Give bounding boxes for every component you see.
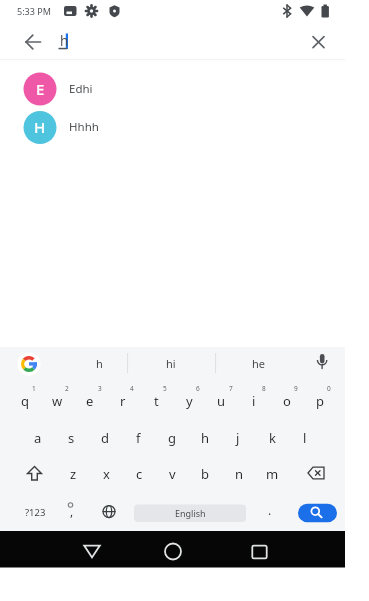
button[interactable]	[18, 28, 48, 56]
staticText: q	[21, 392, 29, 410]
button[interactable]: h	[189, 421, 221, 455]
button[interactable]: g	[156, 421, 188, 455]
button[interactable]: p	[304, 384, 336, 418]
staticText: .	[268, 502, 272, 518]
button[interactable]	[0, 69, 345, 108]
staticText: j	[236, 429, 240, 447]
staticText: 9	[294, 384, 298, 393]
staticText: 8	[262, 384, 266, 393]
button[interactable]	[296, 457, 336, 491]
button[interactable]: f	[122, 421, 154, 455]
button[interactable]	[0, 108, 345, 147]
staticText: r	[120, 392, 126, 410]
staticText: i	[252, 392, 256, 410]
button[interactable]: l	[289, 421, 321, 455]
staticText: v	[169, 465, 176, 483]
staticText: Edhi	[69, 81, 93, 97]
button[interactable]: he	[224, 349, 294, 377]
staticText: l	[303, 429, 307, 447]
button[interactable]: e	[74, 384, 106, 418]
button[interactable]: v	[156, 457, 188, 491]
staticText: w	[52, 392, 63, 410]
button[interactable]	[93, 495, 125, 529]
button[interactable]: c	[123, 457, 155, 491]
staticText: 1	[32, 384, 36, 393]
button[interactable]: ?123	[12, 495, 58, 529]
staticText: t	[154, 392, 159, 410]
staticText: h	[201, 429, 210, 447]
button[interactable]: h	[64, 349, 134, 377]
staticText: y	[186, 392, 193, 410]
staticText: x	[103, 465, 110, 483]
button[interactable]	[298, 503, 337, 522]
button[interactable]: a	[22, 421, 54, 455]
staticText: g	[168, 429, 176, 447]
staticText: a	[34, 429, 42, 447]
button[interactable]: u	[205, 384, 237, 418]
staticText: b	[201, 465, 209, 483]
staticText: s	[68, 429, 75, 447]
staticText: he	[252, 356, 266, 371]
button[interactable]: i	[238, 384, 270, 418]
button[interactable]: ,	[60, 496, 84, 526]
button[interactable]: r	[107, 384, 139, 418]
staticText: 5:33 PM	[17, 5, 51, 17]
staticText: 7	[229, 384, 233, 393]
staticText: e	[86, 392, 94, 410]
button[interactable]: b	[189, 457, 221, 491]
staticText: h	[60, 32, 69, 50]
staticText: 2	[65, 384, 69, 393]
button[interactable]: m	[256, 457, 288, 491]
staticText: u	[217, 392, 226, 410]
staticText: 6	[196, 384, 200, 393]
button[interactable]: j	[222, 421, 254, 455]
staticText: d	[101, 429, 109, 447]
button[interactable]: s	[55, 421, 87, 455]
button[interactable]: .	[258, 495, 282, 525]
button[interactable]: o	[271, 384, 303, 418]
staticText: c	[136, 465, 143, 483]
button[interactable]: z	[57, 457, 89, 491]
button[interactable]: y	[173, 384, 205, 418]
staticText: n	[235, 465, 244, 483]
staticText: k	[269, 429, 276, 447]
staticText: ?123	[25, 506, 46, 519]
staticText: p	[316, 392, 324, 410]
staticText: Hhhh	[69, 119, 99, 135]
staticText: 3	[98, 384, 102, 393]
staticText: z	[70, 465, 77, 483]
button[interactable]	[303, 28, 333, 56]
button[interactable]: English	[134, 504, 246, 522]
button[interactable]: x	[90, 457, 122, 491]
button[interactable]	[239, 533, 279, 566]
staticText: E	[36, 79, 45, 99]
button[interactable]	[153, 533, 193, 566]
button[interactable]: hi	[136, 349, 206, 377]
staticText: 5	[163, 384, 167, 393]
button[interactable]: d	[89, 421, 121, 455]
staticText: o	[283, 392, 291, 410]
staticText: h	[96, 356, 103, 371]
staticText: ,	[70, 503, 74, 519]
staticText: f	[136, 429, 141, 447]
button[interactable]	[72, 533, 112, 566]
button[interactable]: k	[256, 421, 288, 455]
staticText: English	[175, 507, 206, 519]
button[interactable]: t	[140, 384, 172, 418]
staticText: 4	[130, 384, 134, 393]
button[interactable]	[17, 457, 53, 491]
staticText: 0	[327, 384, 331, 393]
button[interactable]: n	[223, 457, 255, 491]
button[interactable]: q	[9, 384, 41, 418]
staticText: H	[34, 117, 46, 137]
button[interactable]: w	[41, 384, 73, 418]
staticText: m	[266, 465, 279, 483]
staticText: hi	[166, 356, 176, 371]
